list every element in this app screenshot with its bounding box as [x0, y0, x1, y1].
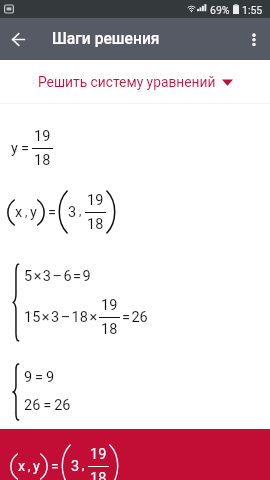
staticText: y — [30, 204, 37, 221]
staticText: = — [21, 140, 29, 157]
staticText: 18 — [87, 216, 104, 233]
staticText: 19 — [87, 192, 104, 209]
staticText: 3 — [68, 204, 77, 221]
button[interactable]: Ещё — [228, 18, 270, 60]
staticText: y — [33, 458, 40, 475]
staticText: 69% — [210, 4, 230, 16]
staticText: = — [48, 204, 56, 221]
staticText: 18 — [90, 470, 107, 480]
staticText: 18 — [34, 152, 51, 169]
staticText: 18 — [101, 321, 118, 338]
button[interactable]: Назад — [0, 18, 39, 60]
staticText: , — [79, 204, 82, 218]
staticText: x — [15, 204, 23, 221]
staticText: 19 — [34, 128, 51, 145]
staticText: 15 × 3 – 18 × — [24, 309, 99, 326]
staticText: = — [51, 458, 59, 475]
staticText: 19 — [101, 297, 118, 314]
staticText: 19 — [90, 446, 107, 463]
staticText: 3 — [71, 458, 80, 475]
button[interactable]: Решить систему уравнений — [0, 60, 270, 103]
staticText: y — [11, 140, 18, 157]
staticText: , — [28, 459, 31, 473]
staticText: 9 = 9 — [24, 369, 55, 386]
staticText: 1:55 — [242, 4, 263, 16]
staticText: , — [25, 205, 28, 219]
staticText: 5 × 3 – 6 = 9 — [24, 268, 91, 285]
staticText: = 26 — [122, 309, 148, 326]
staticText: , — [82, 458, 85, 472]
staticText: Шаги решения — [52, 30, 160, 48]
staticText: Решить систему уравнений — [38, 74, 216, 90]
button[interactable]: x — [0, 429, 270, 480]
staticText: 26 = 26 — [24, 397, 71, 414]
staticText: x — [18, 458, 26, 475]
